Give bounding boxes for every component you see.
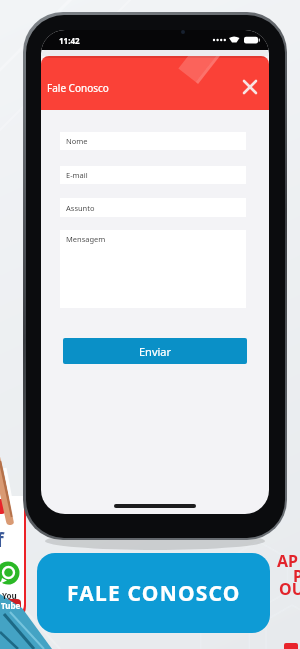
staticText: Enviar	[139, 344, 172, 359]
staticText: Assunto	[66, 203, 95, 213]
staticText: You	[2, 590, 17, 601]
button[interactable]: Enviar	[63, 338, 247, 364]
button[interactable]: Assunto	[60, 198, 246, 217]
staticText: FALE CONOSCO	[67, 579, 241, 608]
button[interactable]: Nome	[60, 132, 246, 150]
staticText: Nome	[66, 136, 88, 146]
staticText: 11:42	[59, 35, 80, 46]
staticText: E-mail	[66, 170, 88, 180]
button[interactable]	[241, 78, 259, 96]
staticText: Tube	[1, 600, 21, 611]
staticText: AP	[277, 550, 299, 572]
staticText: Fale Conosco	[47, 81, 109, 95]
staticText: Mensagem	[66, 234, 106, 244]
button[interactable]: E-mail	[60, 166, 246, 184]
staticText: OU	[279, 578, 300, 600]
button[interactable]: Mensagem	[60, 230, 246, 308]
button[interactable]: FALE CONOSCO	[37, 553, 270, 633]
staticText: f	[0, 526, 4, 553]
staticText: P	[293, 565, 300, 587]
